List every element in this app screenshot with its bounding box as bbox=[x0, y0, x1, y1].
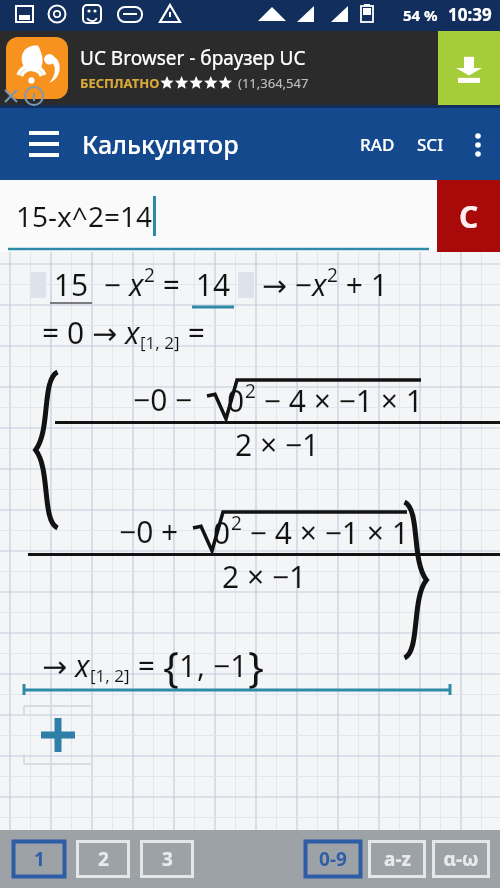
staticText: Калькулятор bbox=[82, 127, 239, 161]
button[interactable]: 1 bbox=[12, 840, 66, 878]
staticText: [1, 2] bbox=[90, 664, 130, 687]
staticText: − 4 × −1 × 1 bbox=[256, 380, 423, 421]
staticText: −1 bbox=[213, 645, 248, 686]
staticText: 1 bbox=[179, 645, 197, 686]
staticText: −0 − bbox=[133, 379, 201, 420]
staticText: 2 × −1 bbox=[235, 424, 320, 465]
button[interactable]: Menu bbox=[20, 120, 68, 168]
button[interactable]: RAD bbox=[350, 121, 405, 168]
staticText: 2 bbox=[98, 846, 109, 872]
button[interactable]: UC Browser - браузер UC bbox=[0, 31, 500, 105]
staticText: 2 bbox=[245, 378, 256, 404]
staticText: 54 % bbox=[403, 5, 438, 25]
button[interactable]: Download bbox=[438, 31, 500, 105]
button[interactable]: 15-x^2=14 bbox=[0, 180, 437, 252]
button[interactable]: More options bbox=[456, 123, 500, 167]
staticText: 1 bbox=[34, 846, 45, 872]
button[interactable]: α-ω bbox=[432, 840, 490, 878]
staticText: 10:39 bbox=[448, 3, 492, 26]
button[interactable]: Add bbox=[22, 704, 94, 766]
staticText: x bbox=[75, 645, 90, 686]
staticText: (11,364,547 bbox=[238, 74, 309, 92]
staticText: 0-9 bbox=[319, 846, 347, 872]
staticText: = bbox=[180, 312, 205, 353]
staticText: БЕСПЛАТНО bbox=[80, 74, 160, 92]
staticText: { bbox=[163, 637, 179, 694]
button[interactable]: SCI bbox=[405, 121, 456, 168]
staticText: 2 bbox=[231, 510, 242, 536]
staticText: = bbox=[155, 264, 188, 305]
staticText: [1, 2] bbox=[140, 331, 180, 354]
staticText: C bbox=[459, 196, 479, 237]
staticText: 3 bbox=[162, 846, 173, 872]
button[interactable]: 2 bbox=[76, 840, 130, 878]
staticText: = bbox=[130, 645, 163, 686]
staticText: 2 bbox=[144, 262, 155, 288]
staticText: 0 bbox=[227, 380, 245, 421]
button[interactable]: 3 bbox=[140, 840, 194, 878]
button[interactable]: C bbox=[437, 180, 500, 252]
staticText: 15 bbox=[46, 264, 96, 305]
staticText: a-z bbox=[384, 846, 411, 872]
staticText: x bbox=[129, 264, 144, 305]
staticText: + 1 bbox=[338, 264, 388, 305]
staticText: 14 bbox=[188, 264, 238, 305]
staticText: } bbox=[248, 637, 264, 694]
button[interactable]: 0-9 bbox=[304, 840, 362, 878]
staticText: → bbox=[42, 645, 75, 686]
staticText: SCI bbox=[417, 133, 444, 156]
button[interactable]: a-z bbox=[368, 840, 426, 878]
staticText: −0 + bbox=[119, 511, 187, 552]
staticText: α-ω bbox=[443, 846, 479, 872]
staticText: 2 × −1 bbox=[222, 556, 307, 597]
staticText: , bbox=[197, 645, 213, 686]
staticText: 0 bbox=[213, 512, 231, 553]
staticText: → − bbox=[254, 264, 312, 305]
staticText: 2 bbox=[327, 262, 338, 288]
staticText: UC Browser - браузер UC bbox=[80, 45, 306, 71]
staticText: 15-x^2=14 bbox=[16, 197, 152, 235]
staticText: RAD bbox=[360, 133, 395, 156]
staticText: x bbox=[312, 264, 327, 305]
staticText: = 0 → bbox=[42, 312, 125, 353]
staticText: − bbox=[96, 264, 129, 305]
staticText: − 4 × −1 × 1 bbox=[242, 512, 409, 553]
staticText: x bbox=[125, 312, 140, 353]
